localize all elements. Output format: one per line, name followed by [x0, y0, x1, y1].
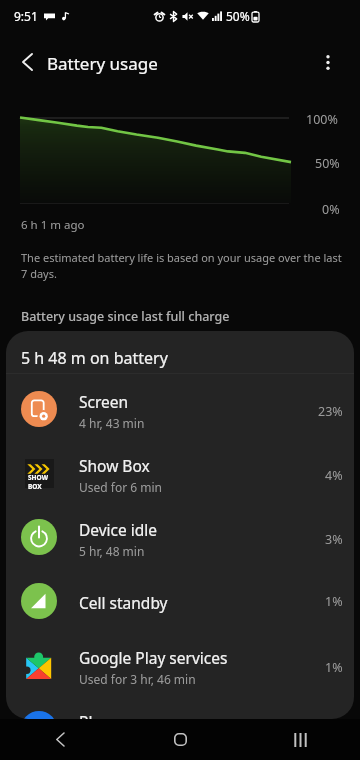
- staticText: 0%: [322, 201, 340, 218]
- button[interactable]: Cell standby: [6, 569, 354, 633]
- staticText: 9:51: [14, 8, 38, 24]
- staticText: 6 h 1 m ago: [21, 217, 85, 233]
- staticText: SHOW: [28, 473, 48, 482]
- staticText: The estimated battery life is based on y…: [21, 250, 345, 281]
- button[interactable]: More options: [308, 42, 348, 82]
- button[interactable]: Navigate up: [7, 42, 47, 82]
- staticText: Show Box: [79, 455, 150, 476]
- button[interactable]: Device idle: [6, 505, 354, 569]
- staticText: Used for 3 hr, 46 min: [79, 671, 196, 687]
- staticText: 1%: [325, 593, 343, 610]
- staticText: 50%: [226, 8, 250, 24]
- button[interactable]: Back: [0, 719, 120, 760]
- staticText: 50%: [315, 155, 340, 172]
- button[interactable]: Google Play services: [6, 633, 354, 697]
- staticText: Google Play services: [79, 647, 228, 668]
- button[interactable]: Screen: [6, 377, 354, 441]
- staticText: Battery usage: [47, 52, 158, 75]
- staticText: 4 hr, 43 min: [79, 415, 145, 431]
- staticText: BOX: [28, 482, 42, 491]
- staticText: 5 h 48 m on battery: [21, 347, 168, 369]
- button[interactable]: SHOW: [6, 441, 354, 505]
- staticText: Used for 6 min: [79, 479, 162, 495]
- staticText: 4%: [325, 467, 343, 484]
- staticText: 5 hr, 48 min: [79, 543, 145, 559]
- staticText: Device idle: [79, 519, 158, 540]
- staticText: 3%: [325, 531, 343, 548]
- staticText: Phone: [79, 711, 126, 719]
- button[interactable]: Phone: [6, 697, 354, 719]
- staticText: Battery usage since last full charge: [21, 308, 230, 325]
- staticText: Cell standby: [79, 592, 168, 613]
- staticText: 23%: [318, 403, 343, 420]
- staticText: 1%: [325, 659, 343, 676]
- staticText: 100%: [306, 111, 338, 128]
- button[interactable]: Recent apps: [240, 719, 360, 760]
- button[interactable]: Home: [120, 719, 240, 760]
- staticText: Screen: [79, 391, 129, 412]
